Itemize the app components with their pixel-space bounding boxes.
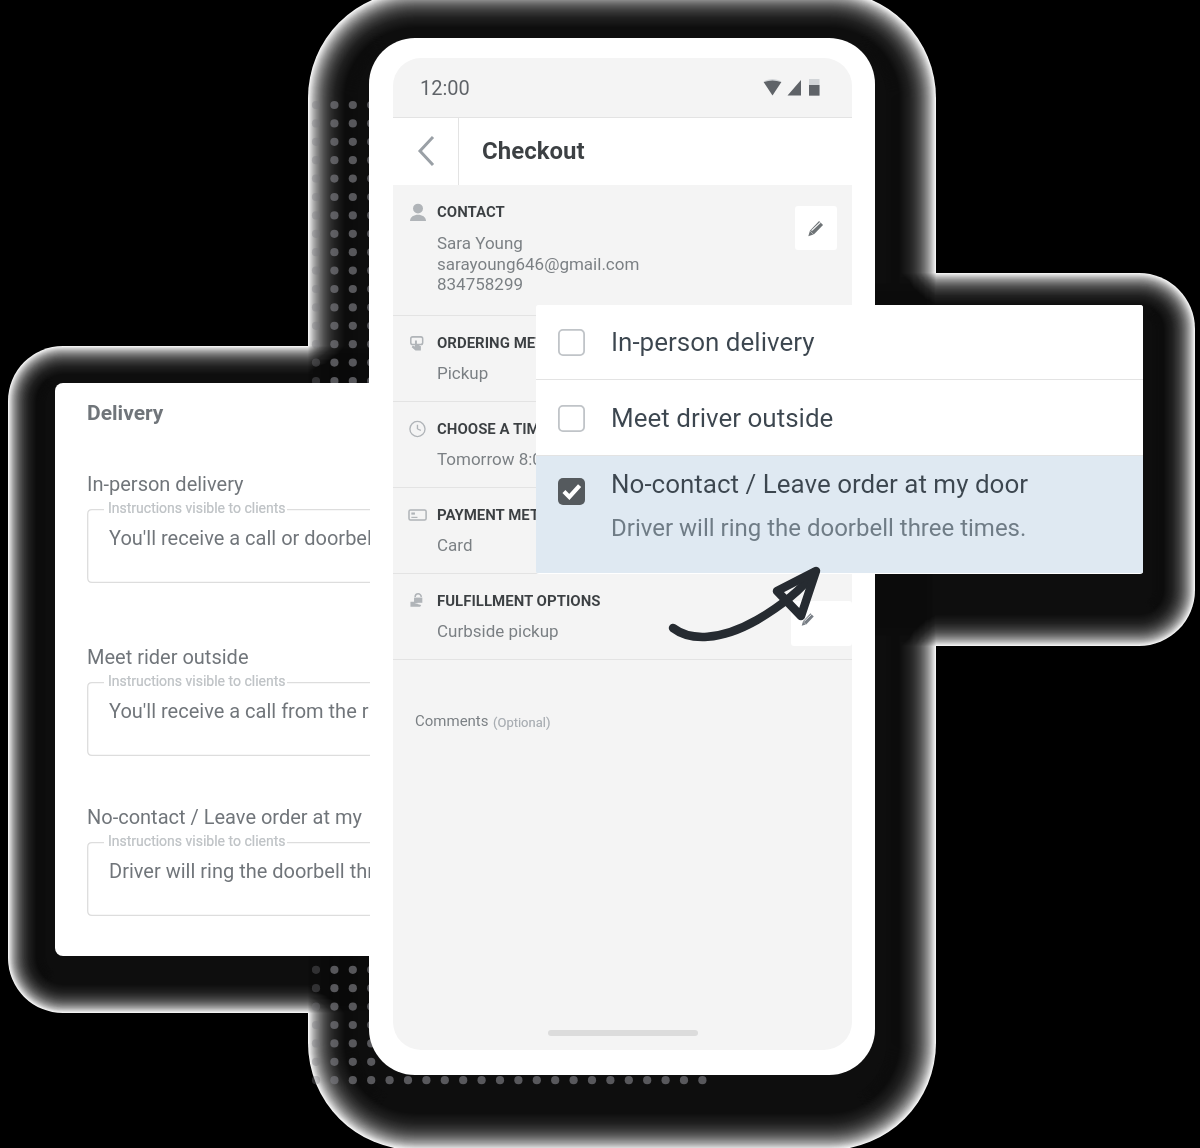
- staticText: You'll receive a call or doorbell: [109, 526, 370, 549]
- staticText: In-person delivery: [611, 327, 815, 357]
- staticText: Driver will ring the doorbell three: [109, 859, 370, 882]
- staticText: Pickup: [437, 363, 489, 383]
- staticText: Instructions visible to clients: [108, 673, 286, 689]
- staticText: You'll receive a call from the rider: [109, 699, 370, 722]
- staticText: Comments: [415, 712, 493, 730]
- staticText: PAYMENT METHOD: [437, 506, 570, 524]
- button[interactable]: Edit contact: [795, 206, 837, 250]
- staticText: Instructions visible to clients: [108, 833, 286, 849]
- staticText: Meet driver outside: [611, 403, 834, 433]
- staticText: CHOOSE A TIME: [437, 420, 549, 438]
- staticText: Sara Young: [437, 233, 523, 253]
- button[interactable]: In-person delivery: [536, 305, 1143, 379]
- staticText: ORDERING METHOD: [437, 334, 576, 352]
- staticText: Delivery: [87, 401, 164, 426]
- staticText: Curbside pickup: [437, 621, 559, 641]
- staticText: Checkout: [482, 137, 585, 165]
- staticText: sarayoung646@gmail.com: [437, 254, 640, 274]
- staticText: Driver will ring the doorbell three time…: [611, 514, 1027, 542]
- staticText: No-contact / Leave order at my door: [611, 469, 1029, 499]
- button[interactable]: Back: [393, 117, 458, 185]
- staticText: Tomorrow 8:00 AM: [437, 449, 582, 469]
- staticText: (Optional): [493, 715, 551, 730]
- button[interactable]: Meet driver outside: [536, 380, 1143, 455]
- button[interactable]: No-contact / Leave order at my door: [536, 456, 1143, 573]
- staticText: Card: [437, 535, 473, 555]
- staticText: CONTACT: [437, 203, 505, 221]
- staticText: In-person delivery: [87, 472, 244, 495]
- button[interactable]: Edit fulfillment options: [791, 601, 852, 646]
- staticText: 834758299: [437, 274, 523, 294]
- staticText: No-contact / Leave order at my door: [87, 805, 370, 828]
- staticText: 12:00: [420, 76, 470, 99]
- staticText: FULFILLMENT OPTIONS: [437, 592, 601, 610]
- staticText: Instructions visible to clients: [108, 500, 286, 516]
- staticText: Meet rider outside: [87, 645, 249, 668]
